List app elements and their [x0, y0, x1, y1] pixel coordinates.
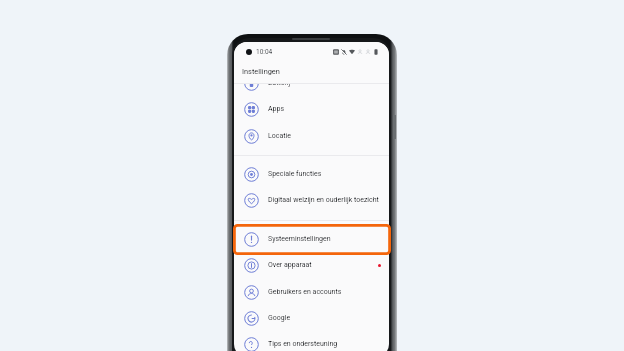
staticText: Systeeminstellingen	[268, 235, 331, 243]
staticText: Over apparaat	[268, 261, 312, 269]
button[interactable]: Systeeminstellingen	[234, 226, 389, 252]
staticText: Speciale functies	[268, 170, 322, 178]
staticText: Locatie	[268, 132, 291, 140]
staticText: Batterij	[268, 79, 291, 87]
button[interactable]: Digitaal welzijn en ouderlijk toezicht	[234, 187, 389, 213]
button[interactable]: Locatie	[234, 123, 389, 149]
button[interactable]: Gebruikers en accounts	[234, 279, 389, 305]
staticText: Digitaal welzijn en ouderlijk toezicht	[268, 196, 379, 204]
staticText: Gebruikers en accounts	[268, 288, 342, 296]
staticText: 10:04	[256, 48, 273, 56]
button[interactable]: Over apparaat	[234, 252, 389, 278]
staticText: Tips en ondersteuning	[268, 340, 338, 348]
staticText: Instellingen	[242, 67, 280, 76]
staticText: Google	[268, 314, 291, 322]
button[interactable]: Speciale functies	[234, 161, 389, 187]
button[interactable]: Google	[234, 305, 389, 331]
button[interactable]: Apps	[234, 96, 389, 122]
staticText: Apps	[268, 105, 285, 113]
button[interactable]: Tips en ondersteuning	[234, 331, 389, 351]
